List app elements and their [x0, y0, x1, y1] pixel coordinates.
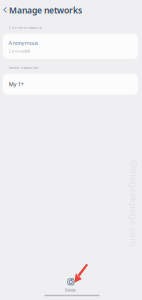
button[interactable]: Anonymous [0, 6, 135, 31]
staticText: My 1+ [9, 80, 24, 88]
staticText: Connected [8, 48, 30, 54]
button[interactable]: My 1+ [0, 6, 135, 27]
button[interactable]: Back [0, 0, 9, 11]
staticText: Anonymous [8, 39, 38, 46]
staticText: Delete [64, 287, 75, 293]
staticText: Saved networks [9, 65, 39, 70]
staticText: Current network [9, 25, 42, 30]
staticText: Manage networks [9, 4, 82, 16]
button[interactable]: Delete [64, 277, 77, 295]
